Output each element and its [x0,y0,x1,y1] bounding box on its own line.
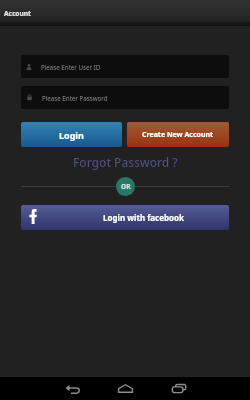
staticText: Please Enter Password [42,94,108,102]
staticText: Create New Account [142,130,214,140]
staticText: Forgot Password ? [73,154,178,170]
staticText: OR [121,182,131,191]
button[interactable]: Back [46,377,99,400]
button[interactable]: Please Enter Password [21,86,229,109]
staticText: Account [4,9,31,18]
button[interactable]: Forgot Password ? [0,153,250,171]
button[interactable]: Login [21,122,122,147]
button[interactable]: Create New Account [127,122,229,147]
button[interactable]: Home [99,377,152,400]
button[interactable]: Login with facebook [21,205,229,230]
button[interactable]: Please Enter User ID [21,55,229,78]
staticText: Please Enter User ID [41,63,101,71]
staticText: Login with facebook [103,212,184,223]
staticText: Login [59,129,84,141]
button[interactable]: Recent apps [152,377,205,400]
